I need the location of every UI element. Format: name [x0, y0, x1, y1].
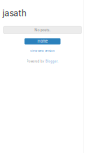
button[interactable]: Home	[24, 38, 60, 44]
button[interactable]: View web version	[0, 49, 85, 53]
button[interactable]: jasath	[0, 0, 26, 18]
staticText: Powered by	[26, 60, 44, 63]
staticText: No posts.	[34, 28, 50, 32]
staticText: jasath	[2, 8, 26, 18]
staticText: Home	[37, 39, 47, 44]
staticText: Blogger.	[45, 60, 58, 63]
staticText: View web version	[30, 49, 55, 53]
button[interactable]: Blogger.	[45, 60, 58, 63]
